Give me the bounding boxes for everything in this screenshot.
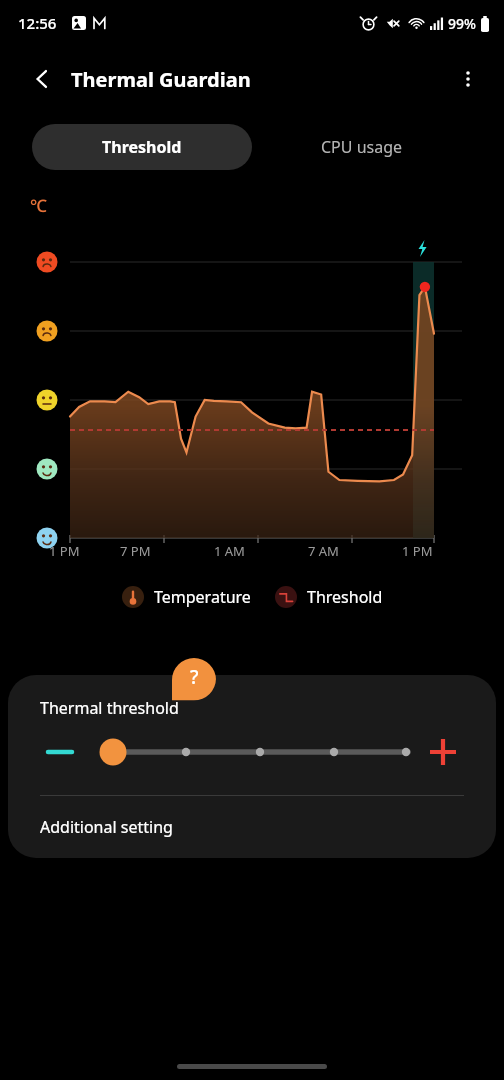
button[interactable]: Decrease threshold (30, 728, 78, 776)
staticText: 1 AM (214, 542, 245, 560)
button[interactable]: Threshold (32, 124, 252, 170)
staticText: Threshold (307, 586, 383, 608)
button[interactable]: Help (172, 658, 216, 704)
staticText: ? (190, 664, 199, 690)
staticText: 1 PM (49, 542, 80, 560)
staticText: 7 AM (308, 542, 339, 560)
button[interactable]: Increase threshold (426, 728, 474, 776)
staticText: Threshold (102, 136, 182, 158)
staticText: Temperature (154, 586, 251, 608)
button[interactable]: More options (446, 57, 490, 101)
staticText: Thermal threshold (40, 697, 179, 719)
staticText: 7 PM (120, 542, 151, 560)
staticText: ℃ (30, 194, 47, 217)
staticText: 99% (448, 14, 476, 33)
staticText: Thermal Guardian (71, 66, 251, 93)
staticText: CPU usage (321, 136, 403, 158)
button[interactable]: Temperature (122, 586, 251, 608)
button[interactable]: Additional setting (8, 796, 496, 858)
button[interactable]: Back (20, 57, 64, 101)
staticText: 1 PM (402, 542, 433, 560)
staticText: 12:56 (18, 13, 57, 33)
button[interactable]: CPU usage (252, 124, 472, 170)
button[interactable]: Threshold (275, 586, 383, 608)
staticText: Additional setting (40, 816, 173, 838)
